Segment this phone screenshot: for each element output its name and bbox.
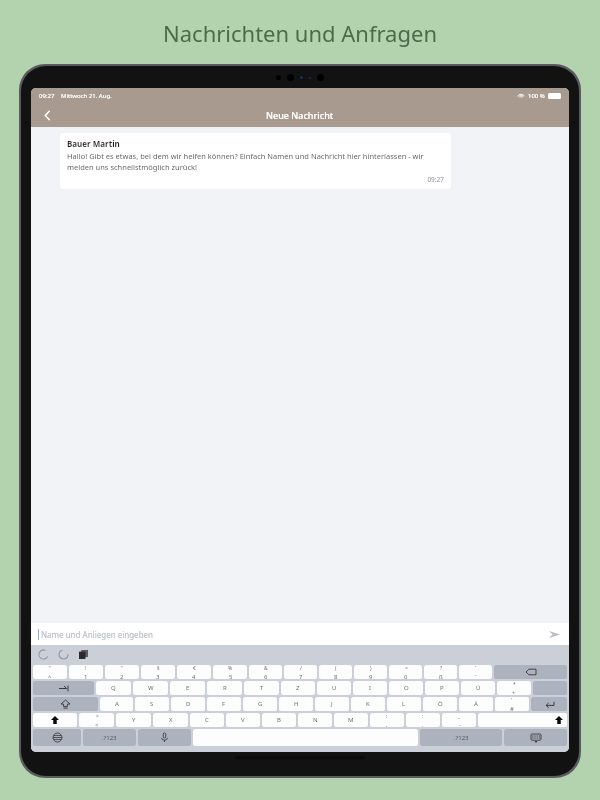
button[interactable]: §: [141, 665, 175, 679]
button[interactable]: H: [279, 697, 313, 711]
button[interactable]: V: [226, 713, 260, 727]
button[interactable]: _: [442, 713, 476, 727]
staticText: 9: [369, 673, 373, 679]
button[interactable]: S: [135, 697, 169, 711]
button[interactable]: I: [353, 681, 387, 695]
button[interactable]: .?123: [83, 729, 136, 746]
button[interactable]: R: [207, 681, 242, 695]
button[interactable]: N: [298, 713, 332, 727]
button[interactable]: %: [213, 665, 247, 679]
button[interactable]: J: [315, 697, 349, 711]
button[interactable]: Einfügen: [78, 649, 89, 660]
button[interactable]: C: [190, 713, 224, 727]
button[interactable]: B: [262, 713, 296, 727]
button[interactable]: A: [100, 697, 133, 711]
staticText: 4: [192, 673, 196, 679]
button[interactable]: T: [244, 681, 279, 695]
button[interactable]: Zurück: [37, 105, 57, 125]
button[interactable]: .?123: [420, 729, 502, 746]
button[interactable]: *: [497, 681, 531, 695]
staticText: ´: [475, 673, 477, 679]
button[interactable]: L: [387, 697, 421, 711]
button[interactable]: M: [334, 713, 368, 727]
button[interactable]: Tastatur ausblenden: [504, 729, 567, 746]
staticText: .: [422, 721, 424, 727]
button[interactable]: D: [171, 697, 205, 711]
staticText: Name und Anliegen eingeben: [41, 629, 154, 640]
button[interactable]: >: [79, 713, 114, 727]
staticText: Neue Nachricht: [266, 109, 334, 121]
button[interactable]: Umschalt: [478, 713, 567, 727]
button[interactable]: Name und Anliegen eingeben: [31, 623, 569, 645]
staticText: %: [228, 665, 233, 672]
button[interactable]: Eingabe: [531, 697, 567, 711]
button[interactable]: :: [406, 713, 440, 727]
button[interactable]: Löschen: [494, 665, 567, 679]
button[interactable]: Wiederholen: [58, 649, 69, 660]
button[interactable]: F: [207, 697, 241, 711]
staticText: €: [193, 665, 196, 672]
button[interactable]: K: [351, 697, 385, 711]
staticText: E: [186, 684, 190, 692]
button[interactable]: ": [33, 665, 67, 679]
staticText: Nachrichten und Anfragen: [0, 18, 600, 48]
staticText: I: [369, 684, 372, 692]
button[interactable]: ?: [424, 665, 457, 679]
staticText: =: [405, 665, 408, 672]
button[interactable]: Ö: [423, 697, 457, 711]
button[interactable]: Y: [116, 713, 151, 727]
button[interactable]: Senden: [546, 626, 562, 642]
button[interactable]: ': [495, 697, 529, 711]
button[interactable]: Rückgängig: [38, 649, 49, 660]
staticText: O: [404, 684, 409, 692]
staticText: 1: [84, 673, 88, 679]
button[interactable]: O: [389, 681, 423, 695]
staticText: W: [148, 684, 154, 692]
button[interactable]: =: [389, 665, 422, 679]
button[interactable]: !: [69, 665, 103, 679]
button[interactable]: U: [317, 681, 351, 695]
button[interactable]: Ä: [459, 697, 493, 711]
button[interactable]: Diktieren: [138, 729, 191, 746]
staticText: M: [348, 716, 354, 724]
button[interactable]: /: [284, 665, 317, 679]
staticText: :: [422, 713, 424, 720]
button[interactable]: E: [170, 681, 205, 695]
button[interactable]: €: [177, 665, 211, 679]
staticText: &: [264, 665, 268, 672]
staticText: `: [475, 665, 477, 672]
button[interactable]: Q: [96, 681, 131, 695]
staticText: 2: [120, 673, 124, 679]
staticText: Hallo! Gibt es etwas, bei dem wir helfen…: [67, 151, 444, 172]
button[interactable]: `: [459, 665, 492, 679]
button[interactable]: Tabulator: [33, 681, 94, 695]
button[interactable]: ): [354, 665, 387, 679]
button[interactable]: (: [319, 665, 352, 679]
staticText: K: [366, 700, 370, 708]
button[interactable]: P: [425, 681, 459, 695]
staticText: ?: [440, 665, 443, 672]
staticText: 7: [299, 673, 303, 679]
staticText: L: [402, 700, 406, 708]
staticText: Ä: [474, 700, 478, 708]
button[interactable]: ;: [370, 713, 404, 727]
button[interactable]: G: [243, 697, 277, 711]
button[interactable]: X: [153, 713, 188, 727]
staticText: ': [511, 697, 513, 704]
staticText: 3: [156, 673, 160, 679]
button[interactable]: W: [133, 681, 168, 695]
button[interactable]: Bauer Martin: [60, 133, 451, 189]
staticText: V: [241, 716, 245, 724]
button[interactable]: &: [249, 665, 282, 679]
button[interactable]: Z: [281, 681, 315, 695]
button[interactable]: Sprache: [33, 729, 81, 746]
button[interactable]: Umschalt: [33, 697, 98, 711]
button[interactable]: ": [105, 665, 139, 679]
staticText: *: [513, 681, 516, 688]
staticText: S: [150, 700, 154, 708]
staticText: ,: [386, 721, 388, 727]
button[interactable]: Umschalt: [33, 713, 77, 727]
button[interactable]: Ü: [461, 681, 495, 695]
